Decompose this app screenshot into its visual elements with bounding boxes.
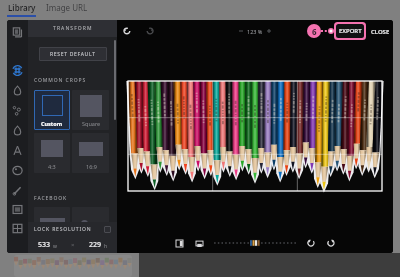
staticText: RESET DEFAULT xyxy=(50,51,96,58)
staticText: w xyxy=(53,243,57,250)
staticText: COMMON CROPS xyxy=(34,77,87,84)
staticText: 533 xyxy=(38,240,51,250)
button[interactable]: Lock resolution xyxy=(104,226,111,233)
button[interactable]: Layers xyxy=(7,22,28,42)
button[interactable] xyxy=(72,207,109,247)
button[interactable]: Filters xyxy=(7,120,28,140)
staticText: Image URL xyxy=(46,2,88,13)
staticText: 16:9 xyxy=(86,163,97,170)
staticText: 6 xyxy=(312,26,317,37)
button[interactable]: Image URL xyxy=(46,0,88,21)
button[interactable]: Frame xyxy=(7,200,28,219)
button[interactable]: Redo xyxy=(143,24,157,38)
button[interactable]: Draw xyxy=(7,160,28,180)
staticText: h xyxy=(104,243,108,250)
button[interactable]: Overlay xyxy=(7,219,28,238)
staticText: TRANSFORM xyxy=(53,25,93,32)
staticText: LOCK RESOLUTION xyxy=(34,226,92,233)
staticText: 4:3 xyxy=(48,163,56,170)
button[interactable]: CLOSE xyxy=(371,23,390,40)
staticText: Library xyxy=(8,2,36,13)
button[interactable]: Library xyxy=(7,0,36,21)
button[interactable]: Rotate left xyxy=(305,237,317,249)
button[interactable]: 4:3 xyxy=(34,133,70,173)
button[interactable]: Square xyxy=(72,90,109,130)
button[interactable]: RESET DEFAULT xyxy=(39,47,107,61)
staticText: Square xyxy=(82,120,101,127)
button[interactable]: Compare xyxy=(173,237,185,249)
staticText: × xyxy=(71,241,75,249)
staticText: Custom xyxy=(41,120,63,127)
staticText: 229 xyxy=(89,240,102,250)
button[interactable]: Zoom in xyxy=(265,27,273,35)
staticText: FACEBOOK xyxy=(34,195,68,202)
staticText: 123 % xyxy=(247,28,263,35)
button[interactable]: Text xyxy=(7,140,28,160)
staticText: EXPORT xyxy=(339,27,362,35)
button[interactable]: Transform xyxy=(7,60,28,80)
button[interactable]: Custom xyxy=(34,90,70,130)
button[interactable]: 16:9 xyxy=(72,133,109,173)
button[interactable]: Adjust xyxy=(7,80,28,100)
button[interactable]: Zoom out xyxy=(237,27,245,35)
button[interactable]: Rotate right xyxy=(325,237,337,249)
button[interactable] xyxy=(34,207,70,247)
button[interactable]: Save xyxy=(193,237,205,249)
button[interactable]: Undo xyxy=(120,24,134,38)
button[interactable]: Effects xyxy=(7,100,28,120)
button[interactable]: EXPORT xyxy=(336,24,364,38)
button[interactable]: History xyxy=(250,239,260,247)
staticText: CLOSE xyxy=(371,28,390,36)
button[interactable]: Brush xyxy=(7,180,28,200)
